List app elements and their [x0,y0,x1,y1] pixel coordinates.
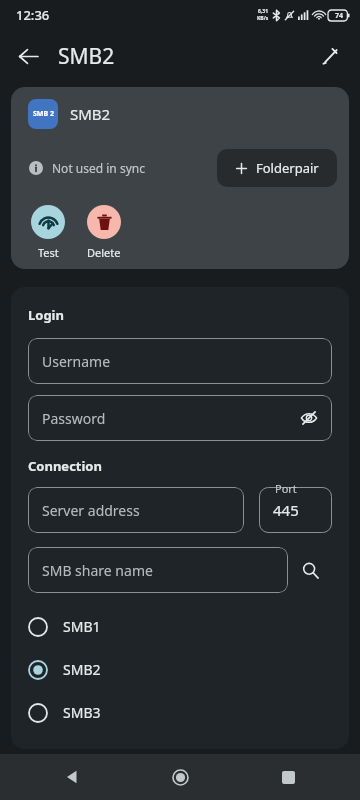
button[interactable]: SMB2 [28,648,332,691]
staticText: 12:36 [16,6,50,24]
staticText: 74 [335,11,344,21]
button[interactable]: SMB share name [28,547,288,593]
staticText: KB/s [257,15,269,22]
button[interactable]: Folderpair [217,149,337,187]
button[interactable]: Username [28,338,332,384]
button[interactable]: SMB1 [28,605,332,648]
staticText: SMB 2 [33,109,54,119]
staticText: SMB1 [63,617,101,636]
staticText: SMB2 [58,42,115,71]
staticText: Port [275,481,297,496]
staticText: Folderpair [256,159,319,177]
button[interactable]: Password [28,395,332,441]
button[interactable]: Recent apps [268,757,308,797]
staticText: 445 [273,500,299,520]
button[interactable]: Test [29,205,67,260]
staticText: Username [42,352,111,371]
button[interactable]: Show password [296,405,322,431]
staticText: Delete [87,245,121,260]
staticText: 6,31 [258,8,269,15]
staticText: Connection [28,457,102,475]
staticText: Password [42,409,106,428]
button[interactable]: Search [288,548,332,592]
staticText: Test [38,245,59,260]
staticText: Server address [42,501,140,520]
staticText: SMB2 [70,104,111,124]
button[interactable]: Back [52,757,92,797]
button[interactable]: SMB3 [28,691,332,734]
staticText: Login [28,306,64,324]
button[interactable]: Edit [310,36,350,76]
button[interactable]: Home [160,757,200,797]
staticText: Not used in sync [52,160,145,176]
button[interactable]: Server address [28,487,244,533]
button[interactable]: Back [8,36,48,76]
staticText: SMB2 [63,660,101,679]
button[interactable]: Delete [85,205,123,260]
staticText: SMB3 [63,703,101,722]
staticText: SMB share name [42,561,153,580]
